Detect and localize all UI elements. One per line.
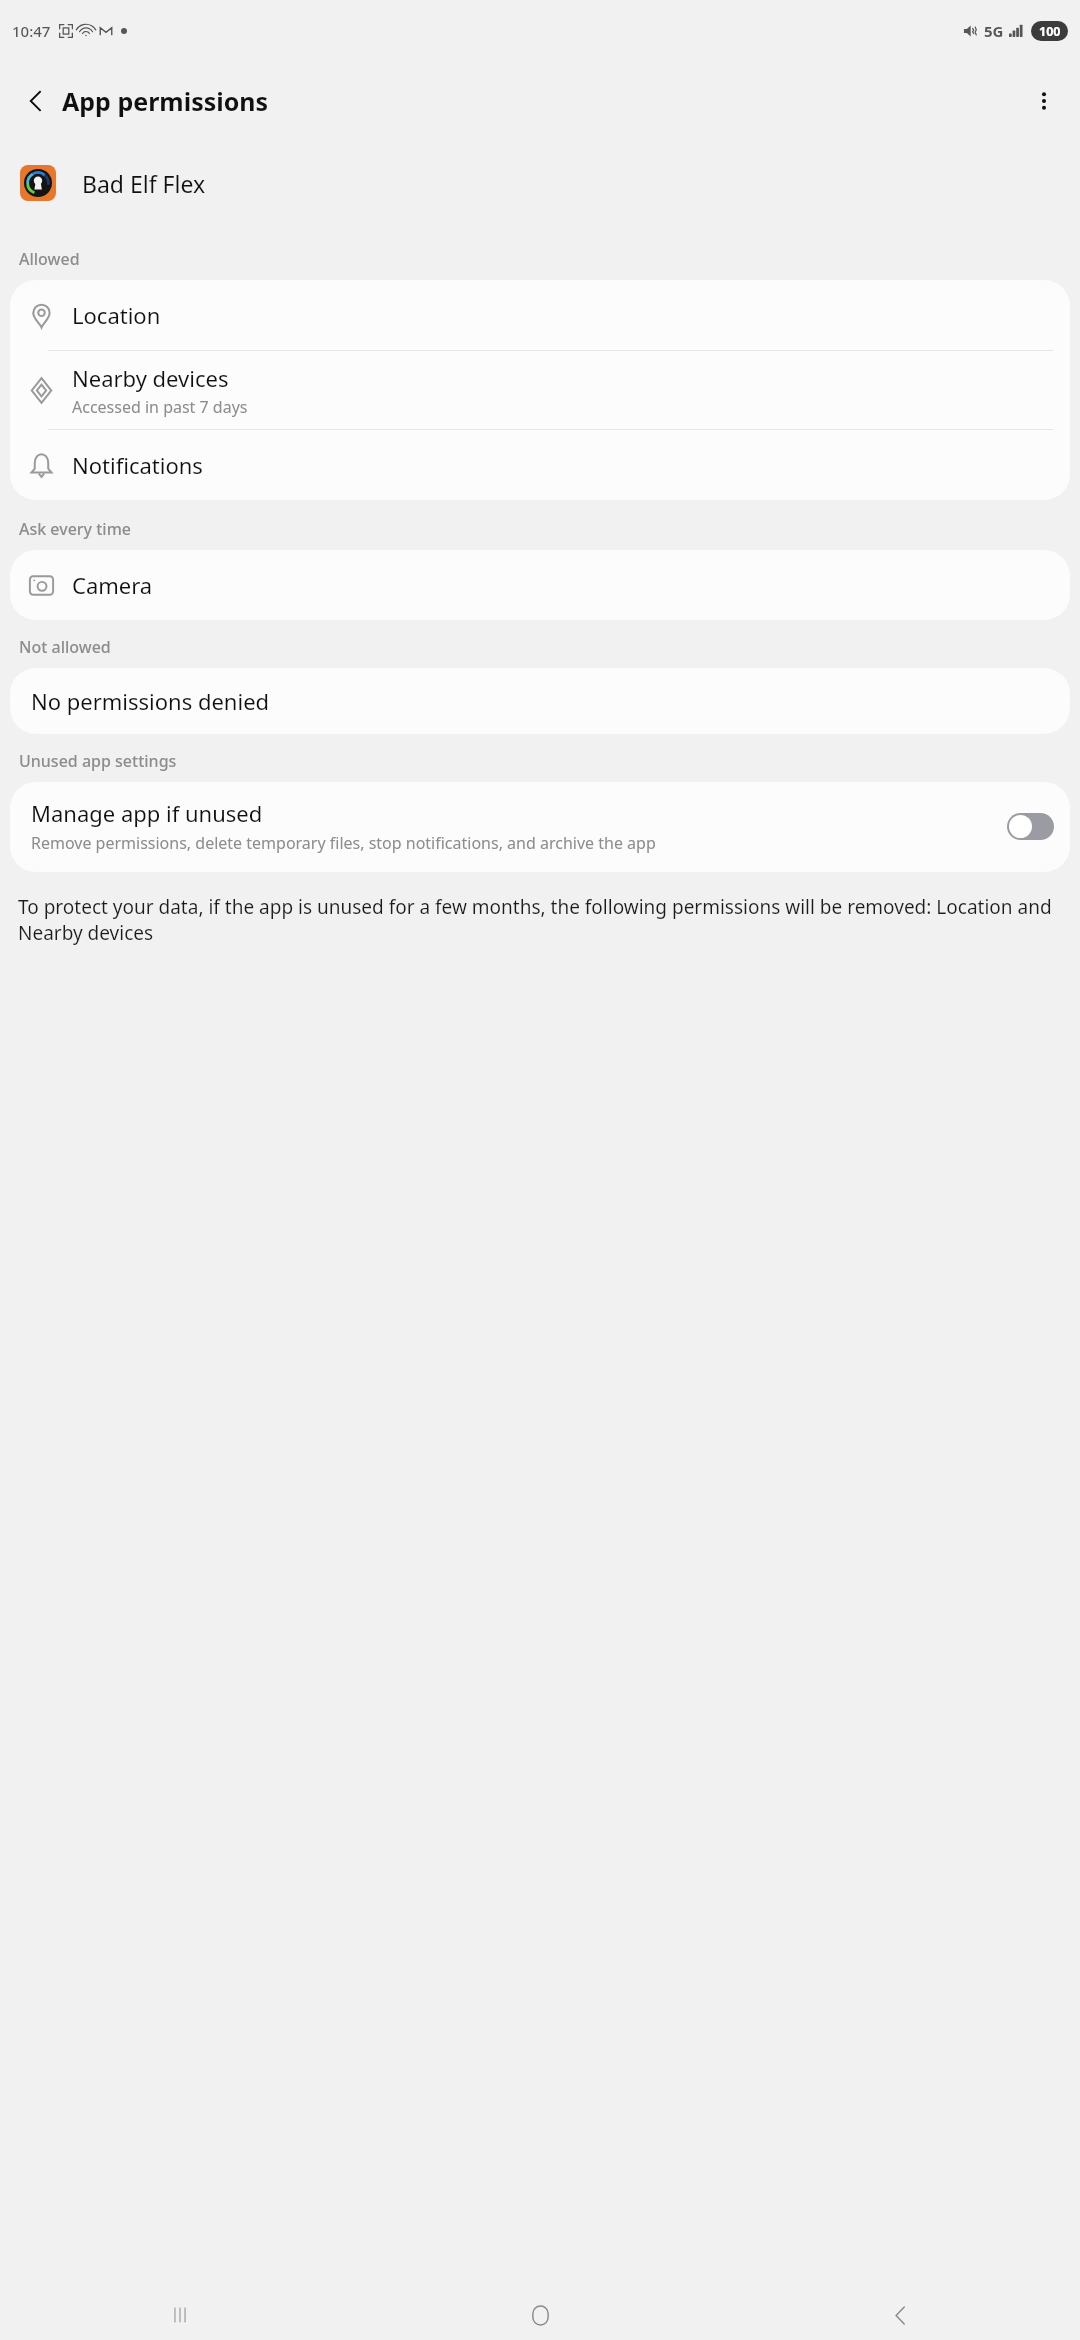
button[interactable]: Recent apps bbox=[0, 2290, 360, 2340]
staticText: Ask every time bbox=[19, 518, 132, 540]
staticText: Accessed in past 7 days bbox=[72, 396, 248, 418]
button[interactable]: No permissions denied bbox=[10, 668, 1070, 734]
staticText: 100 bbox=[1039, 23, 1061, 40]
staticText: Not allowed bbox=[19, 636, 111, 658]
button[interactable]: Location bbox=[10, 280, 1070, 350]
staticText: Camera bbox=[72, 570, 153, 600]
staticText: Unused app settings bbox=[19, 750, 177, 772]
button[interactable]: Manage app if unused bbox=[10, 782, 1070, 872]
staticText: Location bbox=[72, 300, 161, 330]
staticText: App permissions bbox=[62, 84, 269, 118]
button[interactable]: Back bbox=[8, 73, 64, 129]
staticText: Nearby devices bbox=[72, 363, 229, 393]
button[interactable]: Back bbox=[720, 2290, 1080, 2340]
button[interactable]: Camera bbox=[10, 550, 1070, 620]
staticText: Notifications bbox=[72, 450, 203, 480]
button[interactable]: Bad Elf Flex bbox=[0, 140, 1080, 226]
staticText: Manage app if unused bbox=[31, 798, 263, 828]
button[interactable]: More options bbox=[1016, 73, 1072, 129]
staticText: No permissions denied bbox=[31, 686, 270, 716]
staticText: 10:47 bbox=[12, 21, 51, 41]
staticText: Bad Elf Flex bbox=[82, 168, 206, 199]
button[interactable]: Nearby devices bbox=[10, 351, 1070, 429]
staticText: Allowed bbox=[19, 248, 80, 270]
staticText: To protect your data, if the app is unus… bbox=[18, 894, 1062, 946]
button[interactable]: Home bbox=[360, 2290, 720, 2340]
staticText: 5G bbox=[984, 21, 1004, 41]
staticText: Remove permissions, delete temporary fil… bbox=[31, 832, 656, 854]
button[interactable]: Notifications bbox=[10, 430, 1070, 500]
button[interactable]: Manage app if unused toggle bbox=[1007, 813, 1054, 840]
